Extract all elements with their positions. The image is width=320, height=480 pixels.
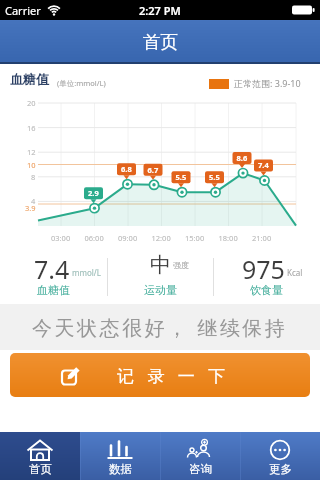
staticText: 血糖值: [37, 283, 70, 297]
staticText: 更多: [269, 462, 292, 476]
staticText: 2:27 PM: [139, 3, 181, 18]
staticText: 7.4: [34, 252, 70, 286]
staticText: 今天状态很好， 继续保持: [32, 314, 288, 341]
staticText: 血糖值: [10, 71, 49, 87]
staticText: 首页: [29, 462, 52, 476]
staticText: 记 录 一 下: [117, 364, 230, 387]
staticText: (单位:mmol/L): [57, 78, 106, 88]
staticText: 强度: [173, 260, 189, 270]
staticText: Kcal: [287, 267, 303, 278]
staticText: 运动量: [144, 283, 177, 297]
staticText: 首页: [143, 31, 178, 53]
staticText: 正常范围: 3.9-10: [234, 77, 301, 89]
staticText: 咨询: [189, 462, 212, 476]
staticText: mmol/L: [72, 267, 102, 278]
staticText: 975: [242, 252, 285, 286]
staticText: 数据: [109, 462, 132, 476]
staticText: 中: [150, 252, 171, 278]
staticText: 饮食量: [250, 283, 283, 297]
staticText: Carrier: [5, 3, 41, 18]
